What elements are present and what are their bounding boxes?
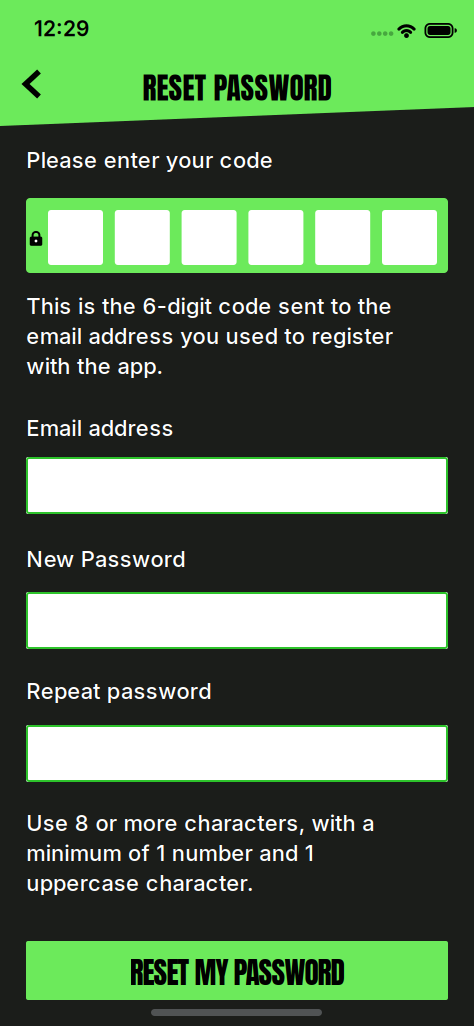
staticText: Use 8 or more characters, with a minimum… (26, 810, 374, 896)
staticText: RESET PASSWORD (142, 66, 331, 110)
staticText: This is the 6-digit code sent to the ema… (26, 293, 393, 379)
button[interactable]: Repeat password (26, 725, 448, 782)
staticText: Please enter your code (26, 147, 273, 173)
button[interactable]: Email address (26, 457, 448, 514)
staticText: RESET MY PASSWORD (129, 950, 344, 995)
staticText: Email address (26, 415, 173, 441)
button[interactable]: Back (10, 62, 54, 106)
button[interactable]: RESET MY PASSWORD (26, 941, 448, 1000)
button[interactable]: Enter code (26, 198, 448, 273)
button[interactable]: New Password (26, 592, 448, 649)
staticText: 12:29 (34, 16, 89, 41)
staticText: Repeat password (26, 678, 211, 704)
staticText: New Password (26, 546, 185, 572)
